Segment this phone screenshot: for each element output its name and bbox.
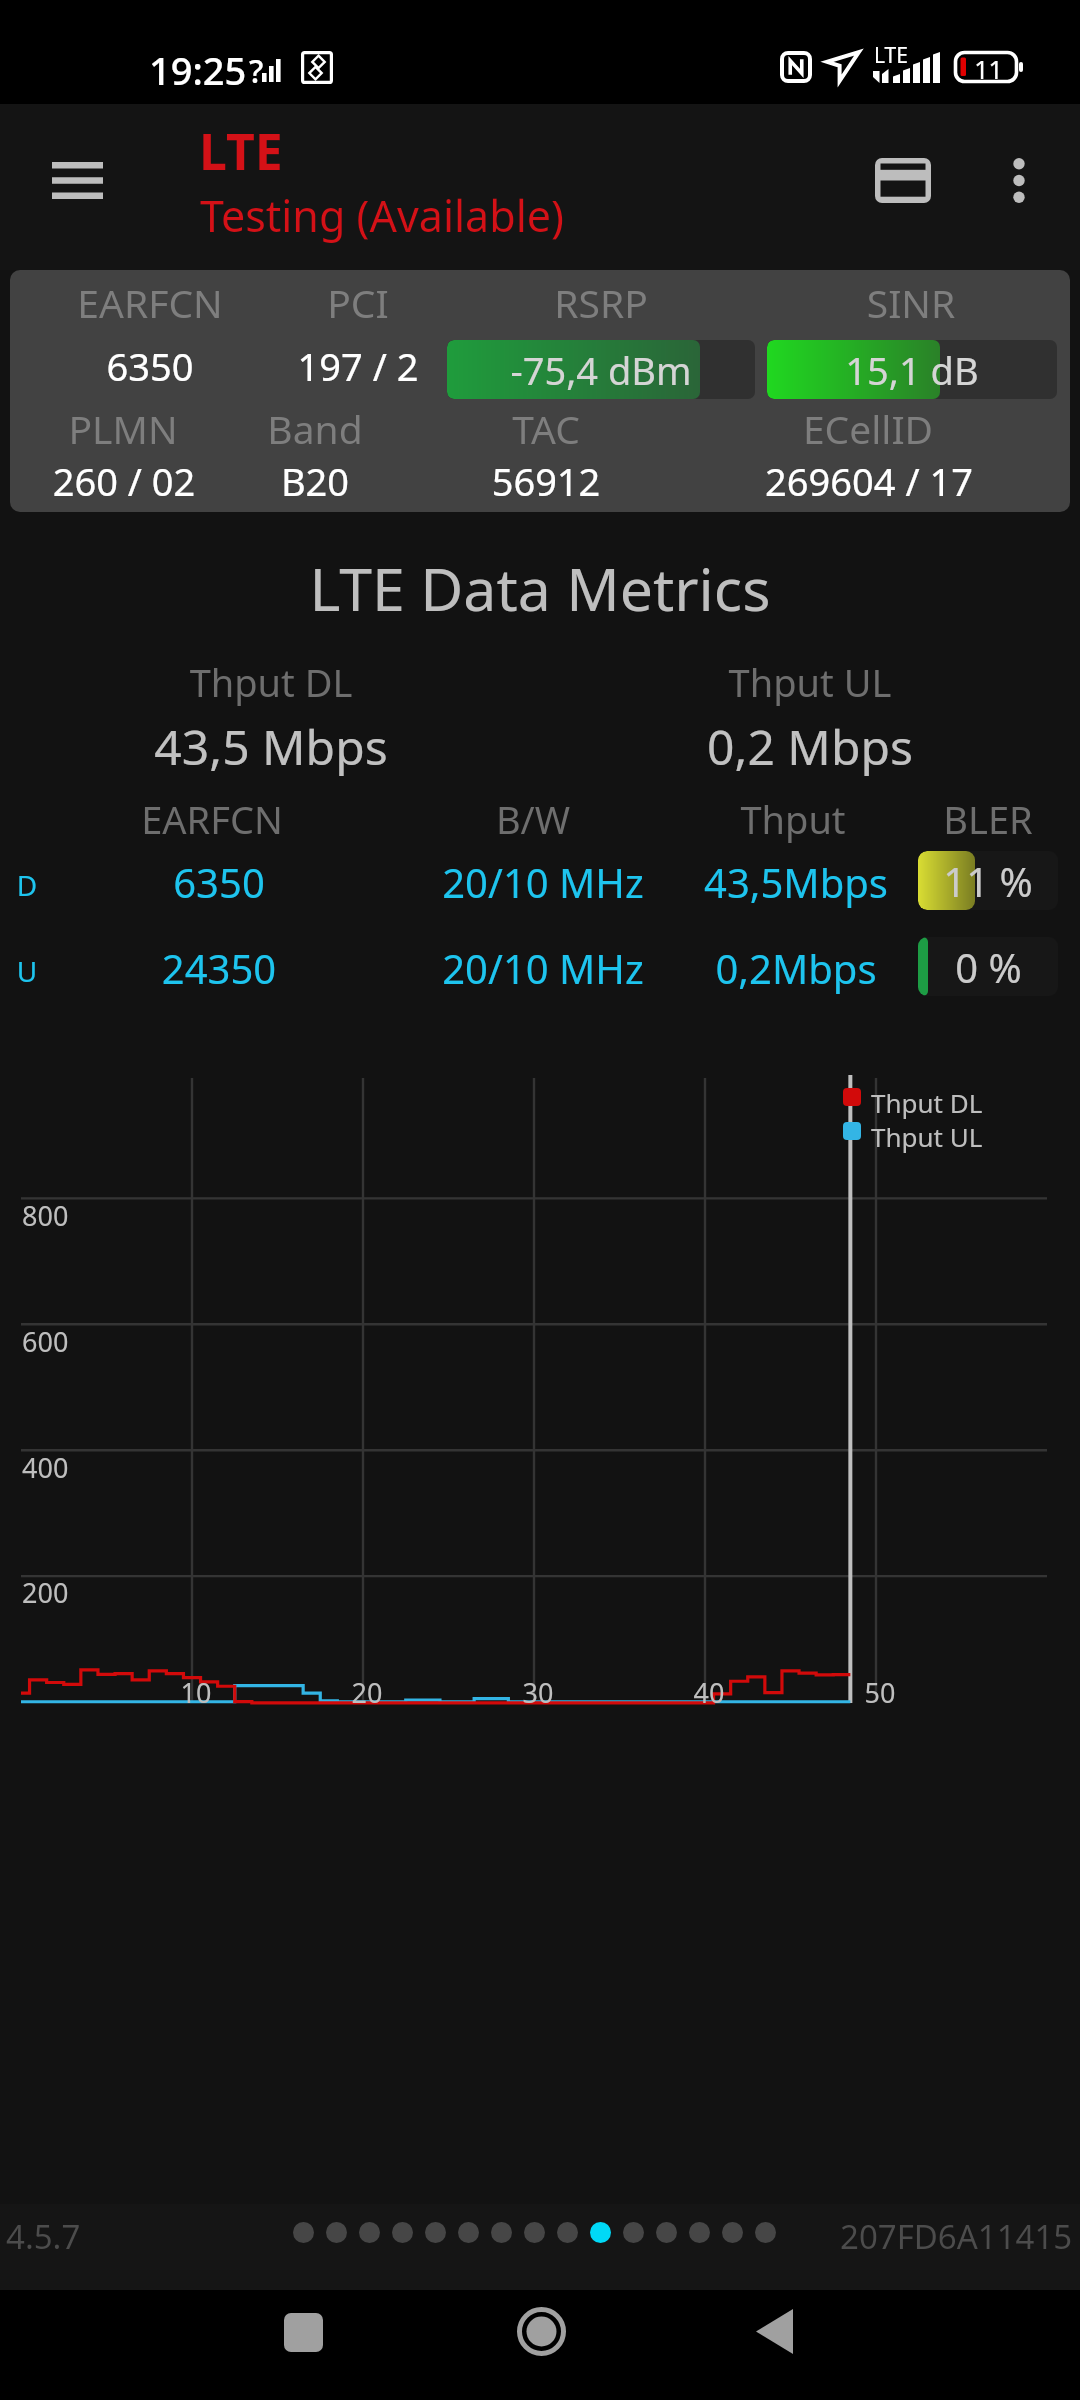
staticText: 24350 [19, 941, 419, 995]
staticText: LTE Data Metrics [280, 548, 800, 628]
staticText: B/W [333, 793, 733, 845]
staticText: LTE [874, 41, 908, 70]
staticText: 10 [136, 1674, 256, 1711]
staticText: Thput UL [871, 1119, 983, 1154]
staticText: 260 / 02 [0, 455, 344, 507]
staticText: SINR [711, 276, 1080, 329]
staticText: 6350 [19, 855, 419, 909]
staticText: 197 / 2 [158, 340, 558, 392]
staticText: 600 [22, 1323, 69, 1360]
staticText: 20/10 MHz [323, 855, 763, 909]
staticText: BLER [788, 793, 1080, 845]
staticText: B20 [115, 455, 515, 507]
staticText: 15,1 dB [845, 344, 979, 396]
staticText: Thput DL [11, 656, 531, 708]
staticText: 4.5.7 [6, 2214, 81, 2259]
staticText: LTE [199, 117, 283, 185]
staticText: 0,2Mbps [596, 941, 996, 995]
staticText: Testing (Available) [200, 186, 564, 245]
staticText: Thput UL [550, 656, 1070, 708]
staticText: 30 [478, 1674, 598, 1711]
staticText: EARFCN [12, 793, 412, 845]
staticText: 11 [974, 52, 1003, 86]
staticText: 40 [649, 1674, 769, 1711]
staticText: 50 [820, 1674, 940, 1711]
staticText: 200 [22, 1574, 69, 1611]
staticText: U [0, 952, 67, 990]
staticText: 269604 / 17 [649, 455, 1080, 507]
staticText: 800 [22, 1197, 69, 1234]
staticText: -75,4 dBm [510, 344, 692, 396]
staticText: ? [249, 49, 264, 93]
staticText: ECellID [668, 402, 1068, 455]
button[interactable]: More options [965, 126, 1073, 234]
button[interactable]: Back [720, 2290, 828, 2398]
staticText: D [0, 866, 67, 904]
button[interactable]: Menu [30, 126, 124, 234]
button[interactable]: Recents [249, 2290, 357, 2398]
staticText: Thput [593, 793, 993, 845]
staticText: EARFCN [0, 276, 350, 329]
staticText: 20 [307, 1674, 427, 1711]
staticText: PCI [158, 276, 558, 329]
staticText: PLMN [0, 402, 323, 455]
button[interactable]: Layout [849, 126, 957, 234]
staticText: 207FD6A11415 [840, 2214, 1073, 2259]
staticText: TAC [346, 402, 746, 455]
staticText: 11 % [943, 854, 1033, 908]
staticText: 0,2 Mbps [550, 714, 1070, 779]
staticText: RSRP [401, 276, 801, 329]
staticText: 43,5 Mbps [11, 714, 531, 779]
staticText: 56912 [346, 455, 746, 507]
staticText: Thput DL [871, 1085, 983, 1120]
staticText: 20/10 MHz [323, 941, 763, 995]
staticText: 43,5Mbps [596, 855, 996, 909]
button[interactable]: Home [487, 2290, 595, 2398]
staticText: 0 % [955, 940, 1022, 994]
staticText: 6350 [0, 340, 350, 392]
staticText: Band [115, 402, 515, 455]
staticText: 400 [22, 1449, 69, 1486]
staticText: 19:25 [149, 44, 247, 96]
